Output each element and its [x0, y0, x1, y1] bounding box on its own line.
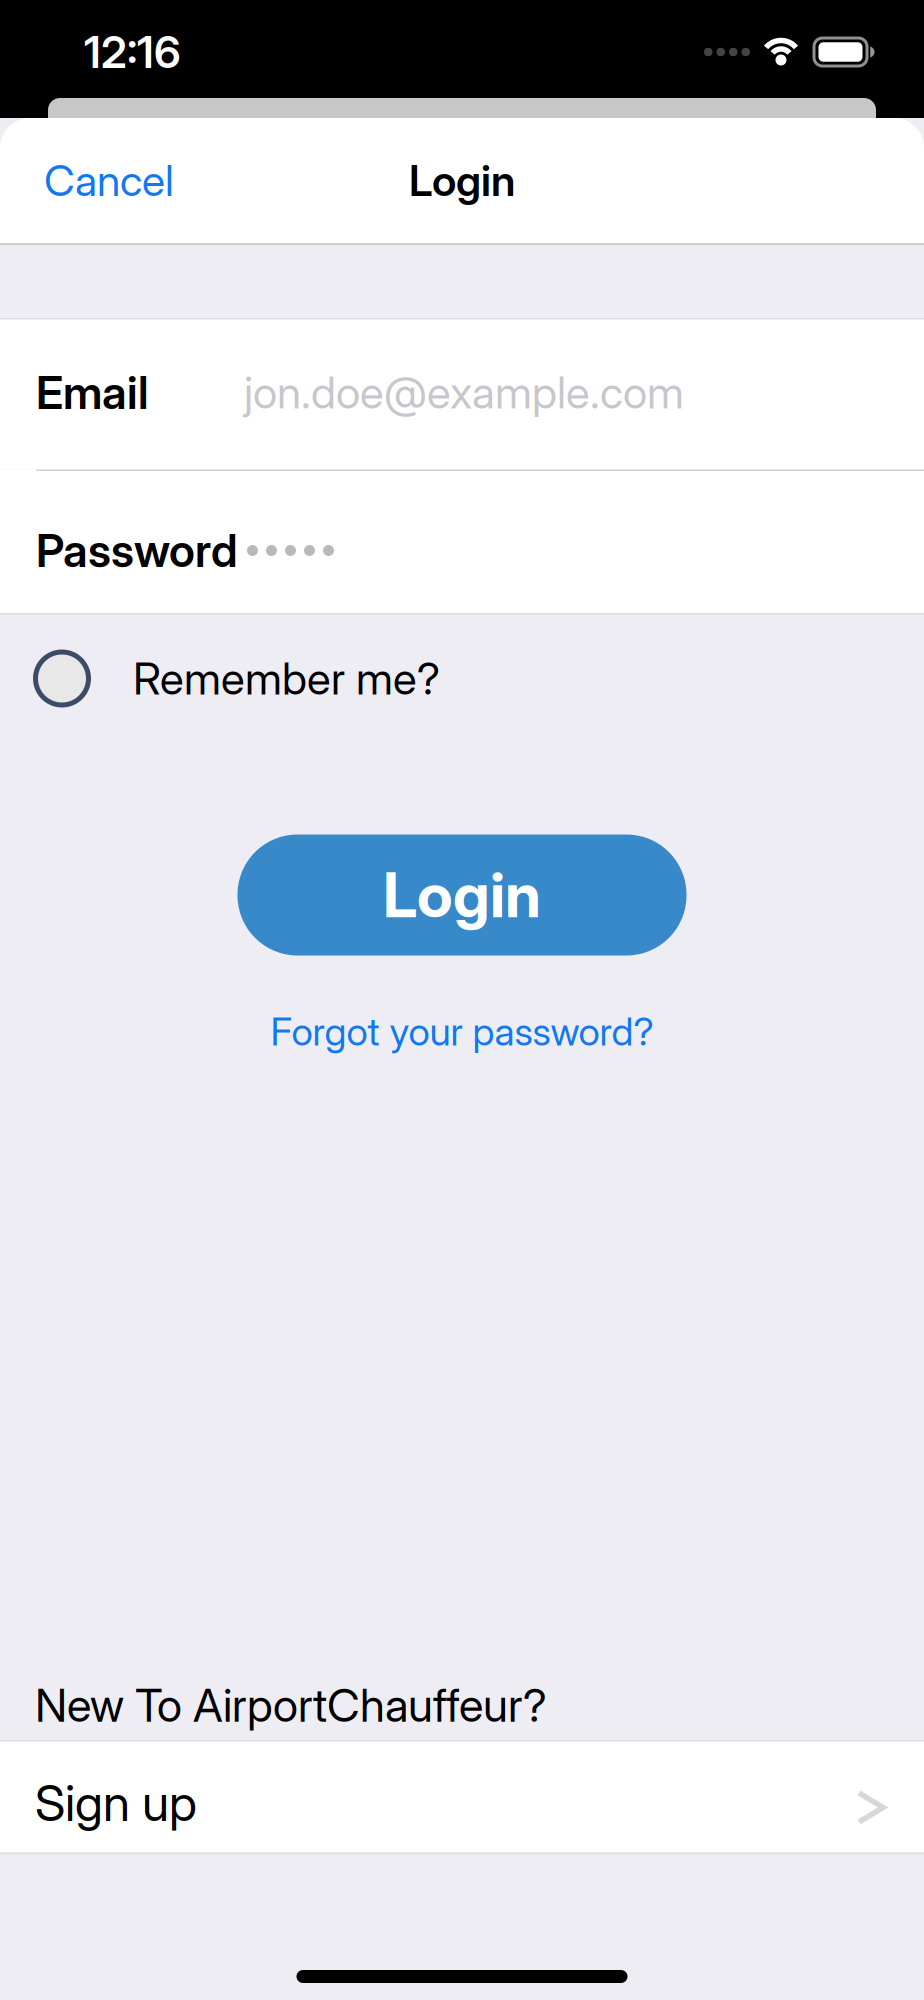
- staticText: jon.doe@example.com: [244, 366, 684, 418]
- button[interactable]: Sign up: [0, 1740, 924, 1854]
- staticText: 12:16: [84, 26, 181, 78]
- staticText: Remember me?: [133, 652, 440, 704]
- button[interactable]: Password: [0, 471, 924, 613]
- staticText: Login: [409, 155, 515, 206]
- staticText: Login: [383, 859, 541, 931]
- button[interactable]: Email: [0, 319, 924, 469]
- button[interactable]: Login: [237, 834, 686, 955]
- staticText: Cancel: [44, 155, 174, 206]
- staticText: Password: [36, 524, 238, 577]
- staticText: New To AirportChauffeur?: [35, 1678, 547, 1732]
- staticText: Sign up: [35, 1774, 197, 1832]
- button[interactable]: Cancel: [0, 155, 174, 206]
- staticText: Forgot your password?: [270, 1008, 653, 1054]
- button[interactable]: Remember me?: [33, 649, 440, 707]
- button[interactable]: Forgot your password?: [270, 1008, 653, 1054]
- staticText: Email: [36, 366, 149, 419]
